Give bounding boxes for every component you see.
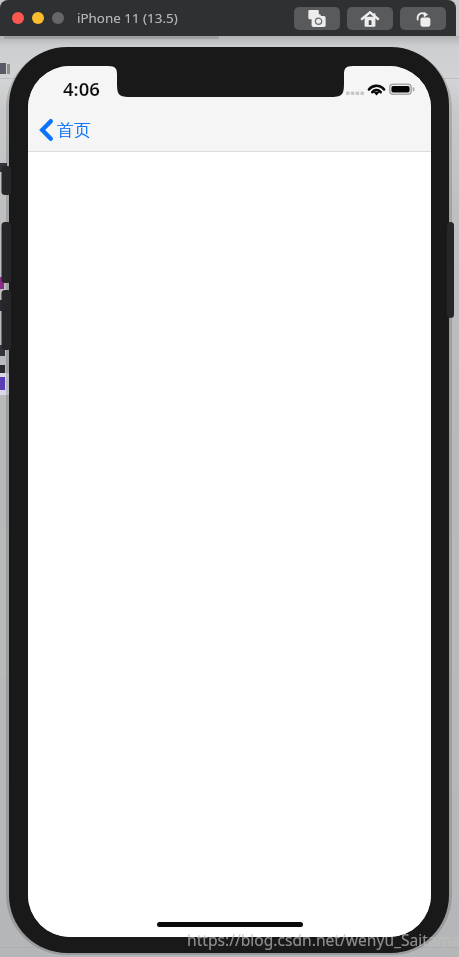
button[interactable]: Take screenshot [294,7,340,30]
button[interactable] [32,12,44,24]
staticText: 4:06 [63,76,100,101]
staticText: iPhone 11 (13.5) [77,9,178,27]
button[interactable] [12,12,24,24]
button[interactable]: 首页 [40,119,91,141]
staticText: 首页 [57,120,91,141]
button[interactable] [52,12,64,24]
button[interactable]: Rotate [400,7,446,30]
button[interactable]: Home [347,7,393,30]
staticText: https://blog.csdn.net/wenyu_Saitama [187,929,459,950]
